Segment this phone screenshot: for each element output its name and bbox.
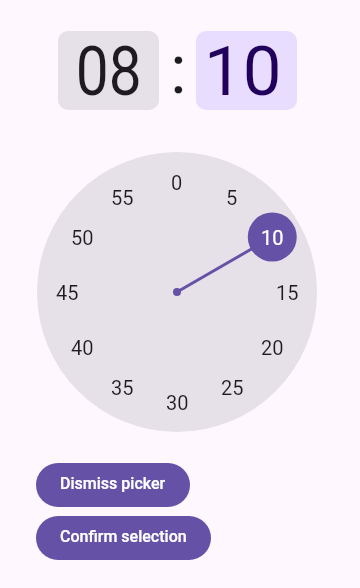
staticText: Confirm selection	[60, 527, 187, 546]
staticText: Dismiss picker	[60, 474, 166, 493]
staticText: 10	[261, 226, 284, 249]
staticText: 30	[166, 391, 189, 414]
staticText: 08	[76, 31, 142, 110]
staticText: 40	[71, 336, 94, 359]
button[interactable]: Dismiss picker	[36, 463, 190, 507]
staticText: 45	[56, 281, 79, 304]
staticText: 50	[71, 226, 94, 249]
staticText: :	[170, 29, 187, 110]
staticText: 5	[226, 186, 238, 209]
staticText: 15	[276, 281, 299, 304]
staticText: 25	[221, 376, 244, 399]
button[interactable]	[37, 152, 317, 432]
staticText: 55	[111, 186, 134, 209]
button[interactable]: 10	[196, 31, 297, 110]
staticText: 20	[261, 336, 284, 359]
button[interactable]: Confirm selection	[36, 516, 211, 560]
staticText: 10	[204, 31, 282, 110]
button[interactable]: 08	[58, 31, 159, 110]
staticText: 35	[111, 376, 134, 399]
staticText: 0	[171, 171, 183, 194]
